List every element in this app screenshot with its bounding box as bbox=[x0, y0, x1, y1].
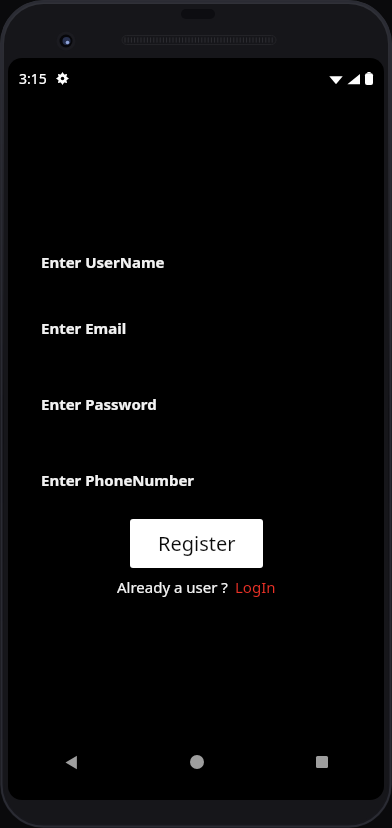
button[interactable]: Register bbox=[130, 519, 263, 568]
staticText: Enter Email bbox=[41, 318, 127, 338]
button[interactable]: Enter Password bbox=[8, 393, 384, 415]
staticText: LogIn bbox=[235, 577, 276, 597]
staticText: Enter Password bbox=[41, 394, 157, 414]
other: Settings bbox=[56, 72, 69, 85]
button[interactable]: Enter UserName bbox=[8, 251, 384, 273]
button[interactable]: Home bbox=[134, 738, 259, 786]
button[interactable]: Enter PhoneNumber bbox=[8, 469, 384, 491]
button[interactable]: Back bbox=[8, 738, 134, 786]
button[interactable]: Enter Email bbox=[8, 317, 384, 339]
button[interactable]: LogIn bbox=[235, 577, 276, 597]
staticText: Enter PhoneNumber bbox=[41, 470, 195, 490]
staticText: 3:15 bbox=[19, 69, 47, 88]
staticText: Enter UserName bbox=[41, 252, 165, 272]
staticText: Already a user ? bbox=[117, 577, 228, 597]
button[interactable]: Recent apps bbox=[259, 738, 384, 786]
staticText: Register bbox=[158, 530, 236, 557]
